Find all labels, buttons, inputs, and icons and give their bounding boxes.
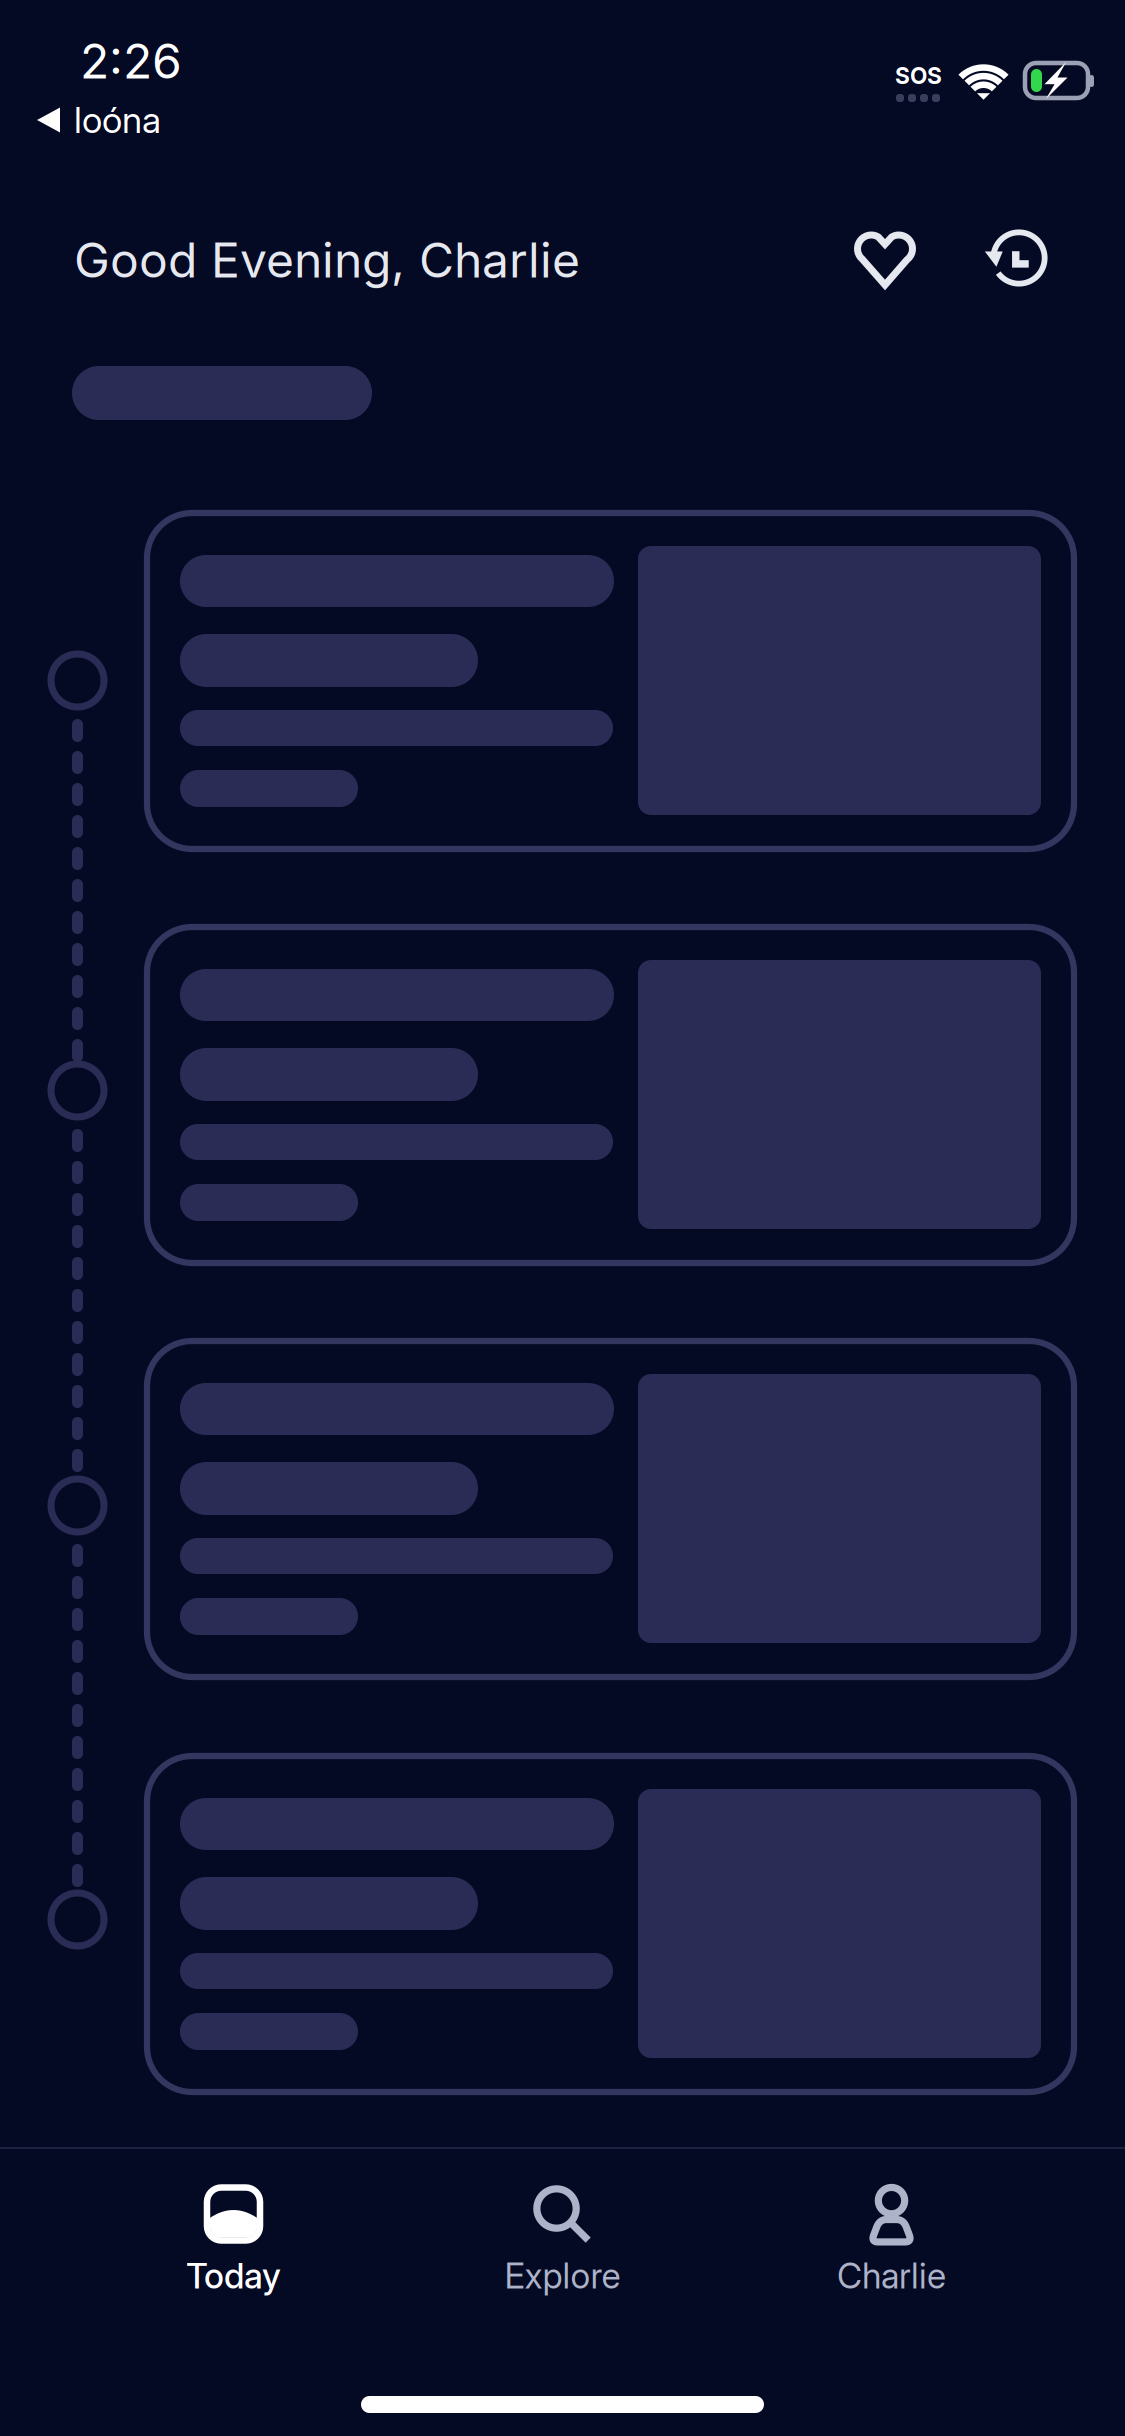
button[interactable]: Back to loóna	[0, 96, 177, 144]
staticText: Explore	[504, 2255, 620, 2297]
button[interactable]: Favorites	[837, 212, 933, 308]
button[interactable]: Loading card	[147, 1341, 1074, 1677]
button[interactable]: History	[971, 210, 1067, 306]
staticText: Today	[186, 2255, 281, 2297]
staticText: SOS	[895, 62, 942, 89]
button[interactable]: Today	[69, 2182, 398, 2332]
button[interactable]: Charlie	[727, 2182, 1056, 2332]
staticText: Good Evening, Charlie	[74, 231, 580, 289]
button[interactable]: Loading card	[147, 927, 1074, 1263]
button[interactable]: Explore	[398, 2182, 727, 2332]
staticText: Charlie	[837, 2255, 946, 2297]
staticText: loóna	[74, 98, 161, 142]
staticText: 2:26	[80, 32, 182, 90]
button[interactable]: Loading card	[147, 513, 1074, 849]
button[interactable]: Loading card	[147, 1756, 1074, 2092]
